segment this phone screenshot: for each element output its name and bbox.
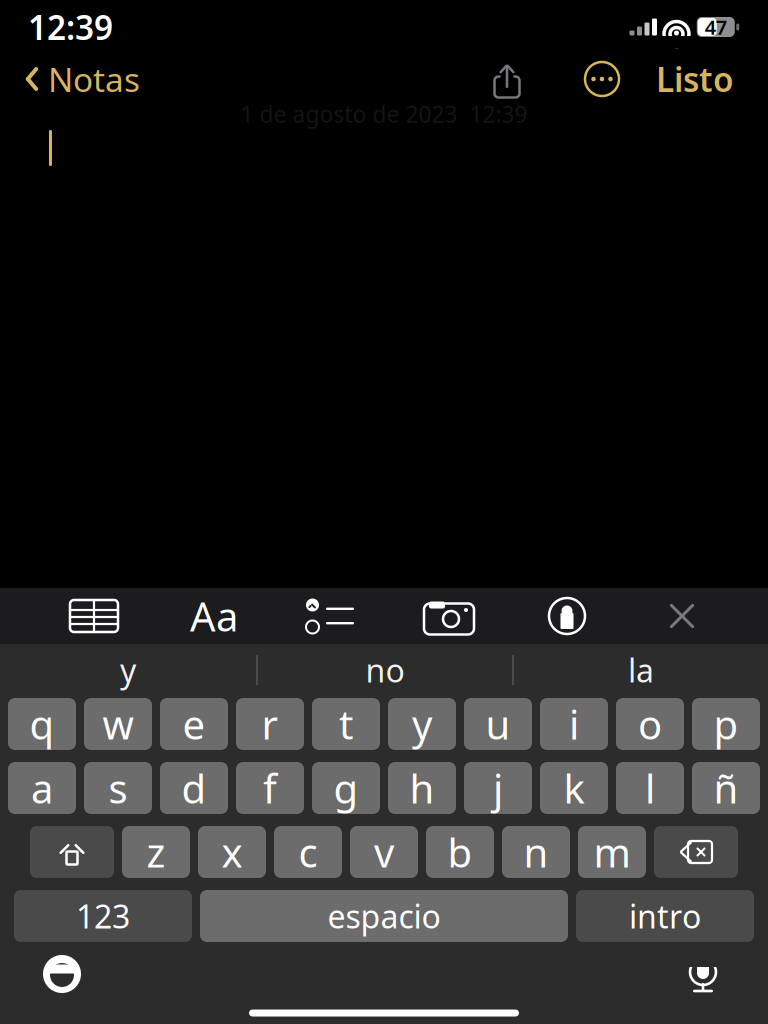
- staticText: espacio: [327, 895, 440, 937]
- staticText: l: [645, 761, 655, 814]
- button[interactable]: e: [160, 698, 228, 750]
- button[interactable]: k: [540, 762, 608, 814]
- button[interactable]: 123: [14, 890, 192, 942]
- staticText: y: [412, 697, 432, 750]
- button[interactable]: Checklist: [270, 588, 390, 644]
- button[interactable]: f: [236, 762, 304, 814]
- staticText: n: [523, 825, 548, 878]
- button[interactable]: r: [236, 698, 304, 750]
- staticText: e: [182, 697, 205, 750]
- button[interactable]: m: [578, 826, 646, 878]
- button[interactable]: i: [540, 698, 608, 750]
- staticText: intro: [629, 895, 701, 937]
- button[interactable]: ñ: [692, 762, 760, 814]
- button[interactable]: Dictate: [686, 949, 768, 999]
- staticText: r: [261, 697, 278, 750]
- button[interactable]: o: [616, 698, 684, 750]
- staticText: c: [298, 825, 317, 878]
- button[interactable]: Camera: [390, 588, 508, 644]
- staticText: k: [563, 761, 584, 814]
- button[interactable]: Emoji keyboard: [0, 948, 82, 1000]
- button[interactable]: Listo: [656, 51, 768, 107]
- button[interactable]: a: [8, 762, 76, 814]
- staticText: s: [108, 761, 127, 814]
- button[interactable]: Shift: [30, 826, 114, 878]
- button[interactable]: la: [514, 644, 768, 696]
- button[interactable]: u: [464, 698, 532, 750]
- staticText: o: [638, 697, 662, 750]
- button[interactable]: z: [122, 826, 190, 878]
- button[interactable]: espacio: [200, 890, 568, 942]
- staticText: t: [339, 697, 353, 750]
- staticText: Listo: [656, 57, 734, 101]
- staticText: h: [409, 761, 434, 814]
- button[interactable]: y: [0, 644, 256, 696]
- button[interactable]: More options: [578, 57, 626, 101]
- staticText: i: [569, 697, 579, 750]
- staticText: d: [181, 761, 206, 814]
- button[interactable]: j: [464, 762, 532, 814]
- button[interactable]: g: [312, 762, 380, 814]
- button[interactable]: t: [312, 698, 380, 750]
- button[interactable]: l: [616, 762, 684, 814]
- staticText: f: [263, 761, 277, 814]
- staticText: j: [493, 761, 503, 814]
- staticText: p: [713, 697, 738, 750]
- staticText: a: [31, 761, 53, 814]
- staticText: Aa: [190, 589, 238, 642]
- staticText: 123: [76, 895, 130, 937]
- staticText: b: [447, 825, 472, 878]
- staticText: 12:39: [28, 5, 113, 49]
- button[interactable]: no: [258, 644, 512, 696]
- staticText: m: [593, 825, 630, 878]
- staticText: w: [102, 697, 133, 750]
- button[interactable]: intro: [576, 890, 754, 942]
- staticText: no: [365, 649, 404, 691]
- staticText: v: [374, 825, 394, 878]
- button[interactable]: n: [502, 826, 570, 878]
- button[interactable]: c: [274, 826, 342, 878]
- staticText: g: [333, 761, 358, 814]
- button[interactable]: w: [84, 698, 152, 750]
- staticText: x: [221, 825, 242, 878]
- button[interactable]: Format text: [158, 588, 270, 644]
- button[interactable]: y: [388, 698, 456, 750]
- button[interactable]: Insert table: [30, 588, 158, 644]
- staticText: la: [628, 649, 654, 691]
- staticText: ñ: [713, 761, 738, 814]
- button[interactable]: s: [84, 762, 152, 814]
- button[interactable]: h: [388, 762, 456, 814]
- button[interactable]: x: [198, 826, 266, 878]
- button[interactable]: q: [8, 698, 76, 750]
- staticText: 47: [705, 14, 727, 40]
- button[interactable]: p: [692, 698, 760, 750]
- staticText: y: [120, 649, 136, 691]
- button[interactable]: Close toolbar: [626, 588, 738, 644]
- staticText: Notas: [48, 57, 140, 101]
- button[interactable]: Share: [484, 58, 530, 100]
- button[interactable]: b: [426, 826, 494, 878]
- staticText: 1 de agosto de 2023 12:39: [240, 99, 527, 129]
- button[interactable]: Delete: [654, 826, 738, 878]
- staticText: z: [146, 825, 165, 878]
- staticText: q: [29, 697, 54, 750]
- button[interactable]: Markup: [508, 588, 626, 644]
- button[interactable]: v: [350, 826, 418, 878]
- staticText: u: [485, 697, 510, 750]
- button[interactable]: d: [160, 762, 228, 814]
- button[interactable]: Notas: [0, 51, 140, 107]
